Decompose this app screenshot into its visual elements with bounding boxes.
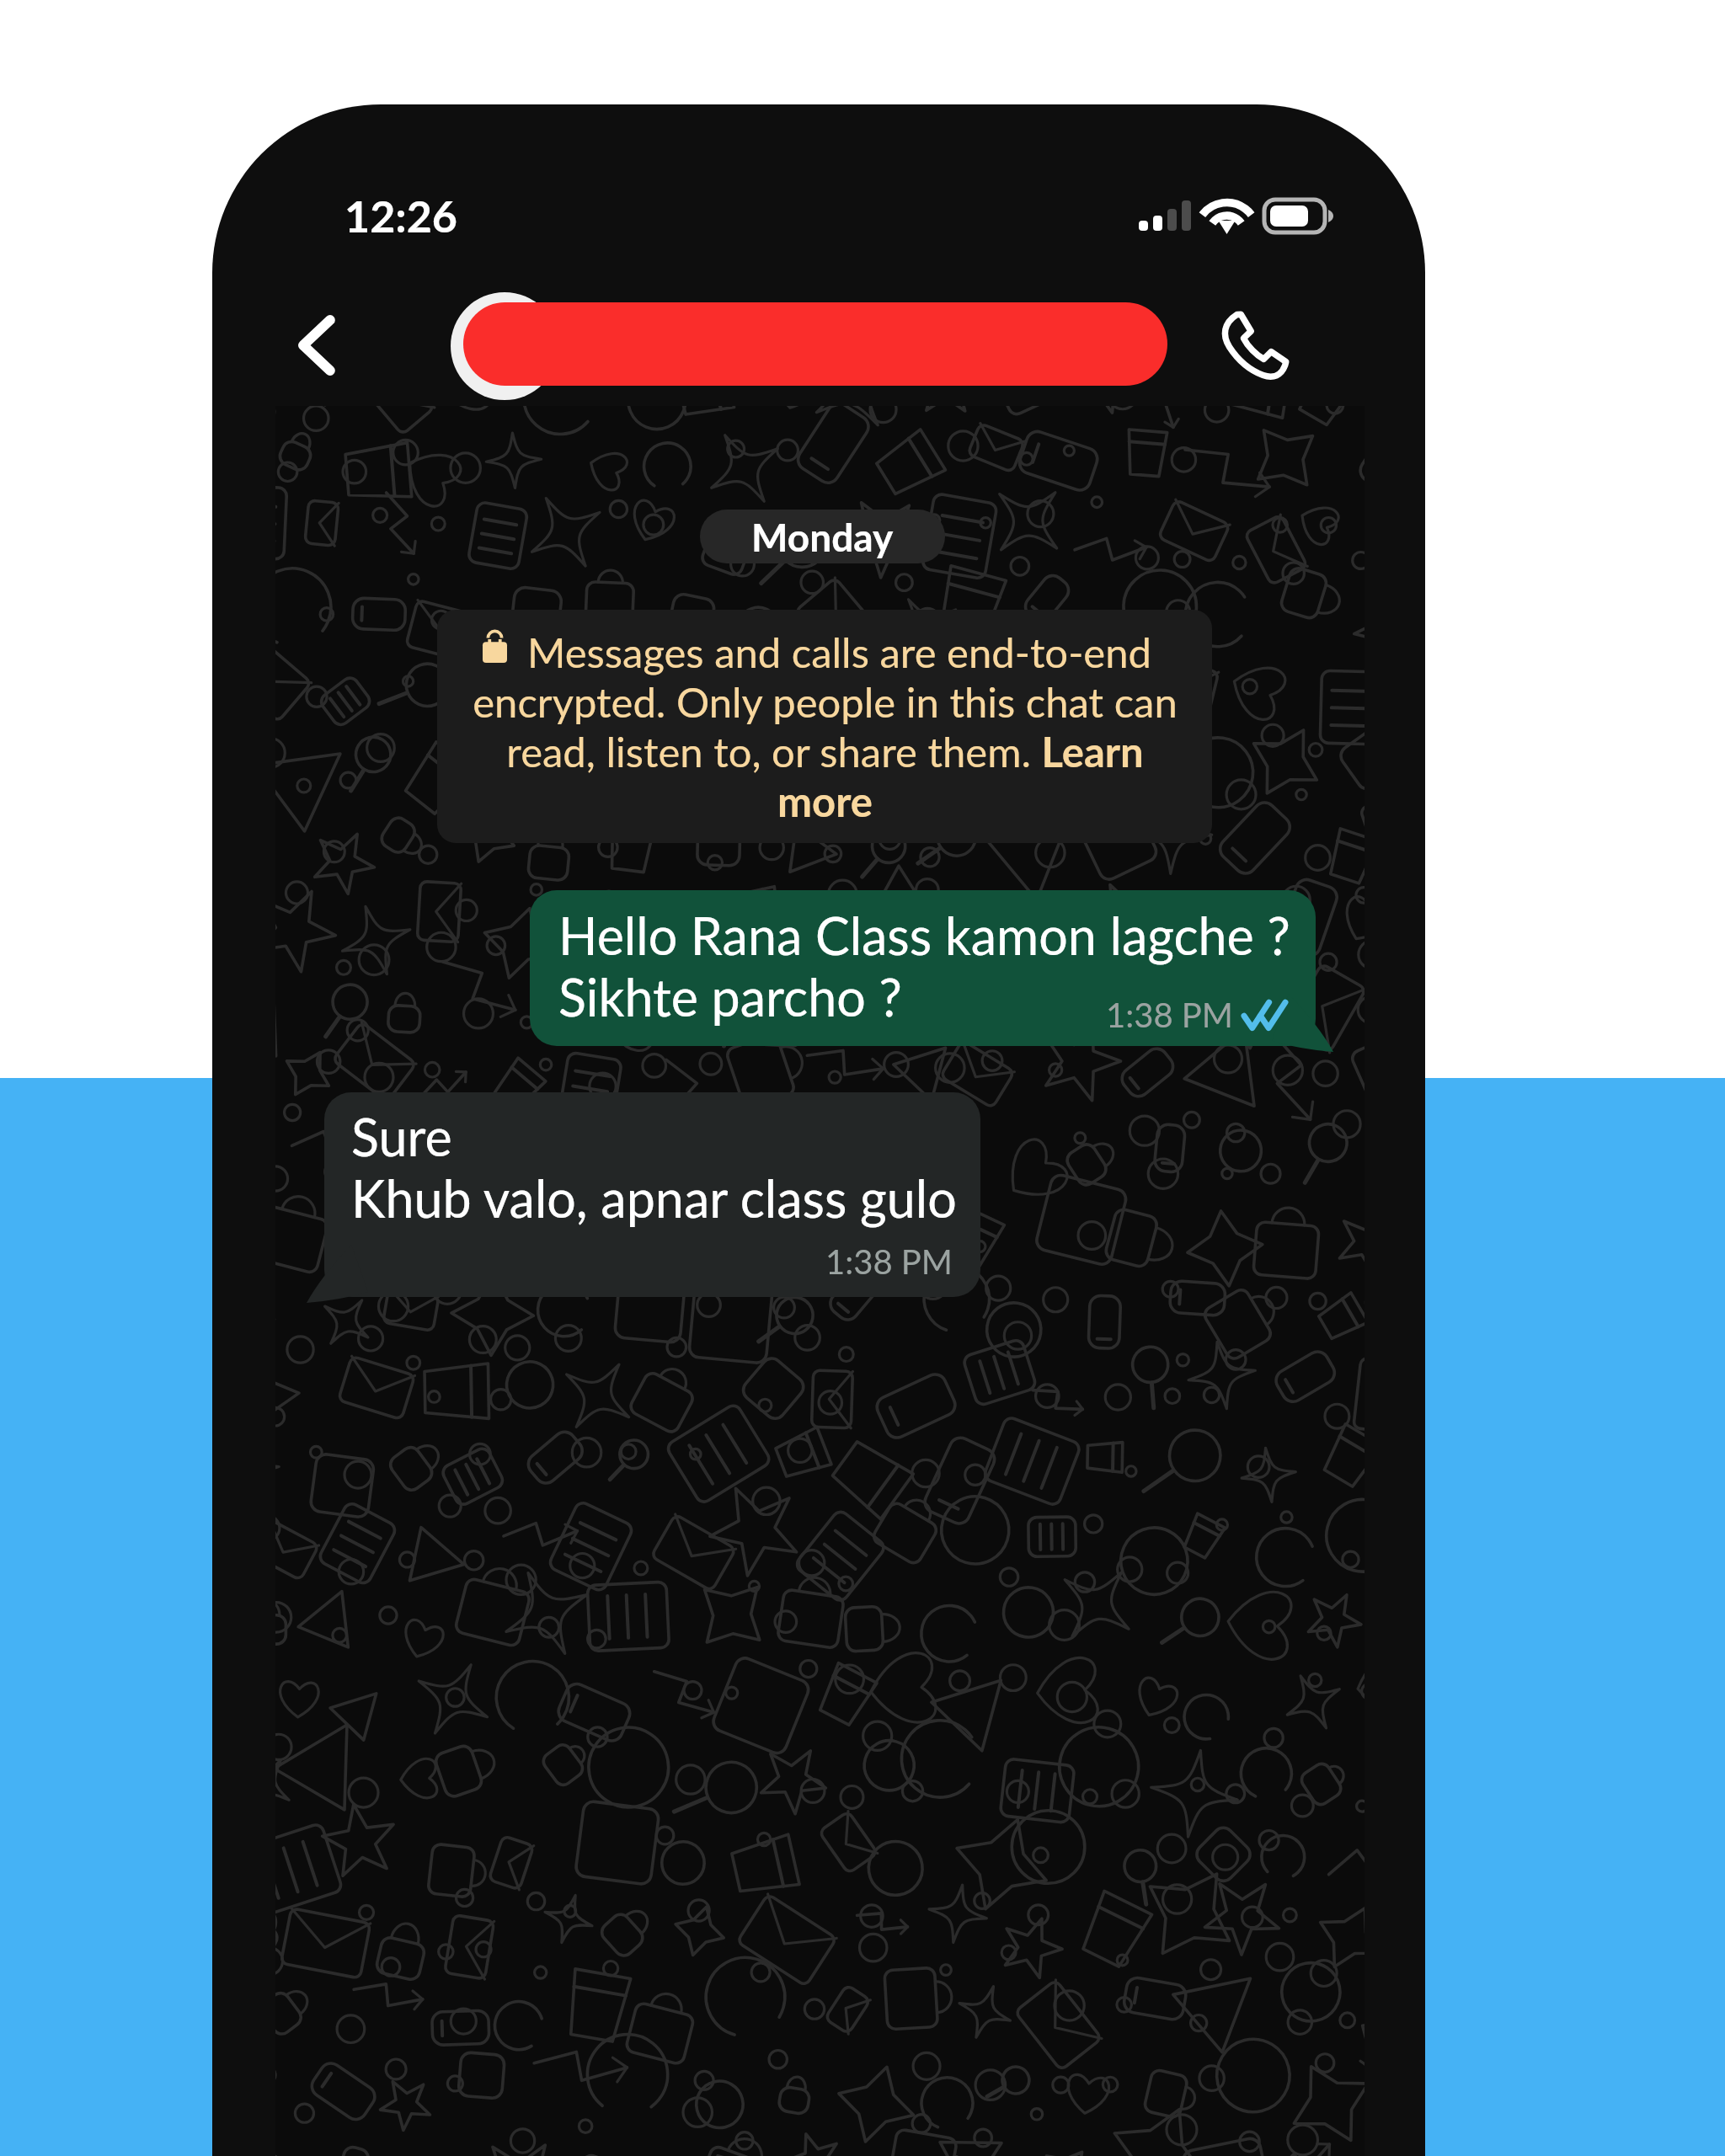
button[interactable]: Contact profile — [445, 278, 1413, 413]
staticText: encrypted. Only people in this chat can — [473, 677, 1178, 727]
button[interactable]: Sure — [324, 1092, 980, 1297]
staticText: Sikhte parcho ? — [558, 966, 902, 1027]
staticText: read, listen to, or share them. Learn — [506, 727, 1144, 776]
staticText: Monday — [751, 514, 894, 560]
staticText: Messages and calls are end-to-end — [527, 627, 1151, 677]
staticText: Hello Rana Class kamon lagche ? — [558, 905, 1290, 966]
button[interactable]: Hello Rana Class kamon lagche ? — [530, 890, 1316, 1046]
button[interactable]: Call — [1186, 278, 1321, 413]
button[interactable]: Messages and calls are end-to-end — [437, 610, 1212, 843]
button[interactable]: Back — [241, 278, 393, 413]
staticText: 1:38 PM — [1106, 995, 1233, 1035]
staticText: 1:38 PM — [825, 1241, 953, 1282]
staticText: Khub valo, apnar class gulo — [351, 1167, 957, 1229]
staticText: Sure — [351, 1106, 452, 1167]
staticText: 12:26 — [344, 189, 458, 242]
staticText: more — [777, 776, 873, 826]
button[interactable]: Monday — [700, 510, 945, 563]
